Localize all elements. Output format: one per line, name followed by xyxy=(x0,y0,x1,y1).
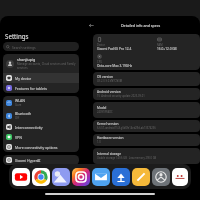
staticText: 24091RPADC xyxy=(97,110,113,114)
staticText: Features for tablets xyxy=(15,86,47,91)
staticText: Device xyxy=(97,43,105,47)
staticText: Android version xyxy=(97,90,121,94)
button[interactable]: Interconnectivity xyxy=(3,122,79,132)
staticText: shanjiupig xyxy=(17,57,36,62)
staticText: Hardware version xyxy=(97,136,124,140)
button[interactable]: My device xyxy=(3,73,79,83)
staticText: Settings xyxy=(5,32,29,40)
staticText: CPU xyxy=(97,60,103,64)
staticText: Detailed info and specs xyxy=(121,23,161,28)
button[interactable]: Kernel version xyxy=(93,120,200,132)
button[interactable]: Internal storage xyxy=(93,148,200,164)
button[interactable]: Notes xyxy=(132,168,150,186)
button[interactable]: Instagram xyxy=(72,168,90,186)
staticText: 1.0 xyxy=(97,140,101,144)
staticText: Usable storage 149.6 GB Low memory 290.0… xyxy=(97,156,157,160)
staticText: More connectivity options xyxy=(15,145,58,150)
button[interactable]: shanjiupig xyxy=(3,54,79,73)
button[interactable]: Photos xyxy=(52,168,70,186)
staticText: Interconnectivity xyxy=(15,125,43,130)
staticText: OS 2.0.9.0.VNTCNXM xyxy=(97,79,123,83)
staticText: Manage accounts, Cloud services and Fami… xyxy=(17,62,76,70)
staticText: My device xyxy=(15,76,32,81)
staticText: Gure xyxy=(15,103,22,107)
staticText: 16.0+12.0 GB xyxy=(157,47,177,51)
button[interactable]: VPN xyxy=(3,132,79,142)
staticText: Xiaomi HyperAI xyxy=(15,158,41,163)
button[interactable]: App xyxy=(172,168,188,186)
button[interactable]: Mail xyxy=(92,168,110,186)
staticText: Search settings xyxy=(12,45,36,49)
staticText: VPN xyxy=(15,135,22,140)
button[interactable]: Search settings xyxy=(3,42,79,51)
button[interactable]: More connectivity options xyxy=(3,142,79,152)
button[interactable]: Model xyxy=(93,102,200,118)
staticText: Xiaomi Pad 6S Pro 12.4 xyxy=(97,47,132,51)
staticText: OS version xyxy=(97,75,114,79)
button[interactable]: Files xyxy=(112,168,130,186)
staticText: WLAN xyxy=(15,98,25,103)
staticText: 15 Android security update 2025-09-01 xyxy=(97,94,145,98)
staticText: 6.6.57-android15-8-g5d0fe14ed29d-ab13374… xyxy=(97,126,156,130)
staticText: Kernel version xyxy=(97,122,119,126)
button[interactable]: Android version xyxy=(93,88,200,100)
button[interactable]: OS version xyxy=(93,72,200,86)
staticText: Octa-core Max 3.19GHz xyxy=(97,64,133,68)
button[interactable]: Settings xyxy=(152,168,170,186)
button[interactable]: Features for tablets xyxy=(3,83,79,93)
button[interactable]: Chrome xyxy=(32,168,50,186)
button[interactable]: Xiaomi HyperAI xyxy=(3,155,79,165)
button[interactable]: Hardware version xyxy=(93,134,200,146)
button[interactable]: Back xyxy=(87,21,95,29)
button[interactable]: Bluetooth xyxy=(3,109,79,122)
button[interactable]: Device xyxy=(93,34,200,70)
staticText: Off xyxy=(15,116,20,120)
button[interactable]: WLAN xyxy=(3,96,79,109)
staticText: Model xyxy=(97,106,107,110)
staticText: Bluetooth xyxy=(15,111,32,116)
staticText: Internal storage xyxy=(97,152,122,156)
button[interactable]: YouTube xyxy=(12,168,30,186)
staticText: RAM xyxy=(157,43,163,47)
